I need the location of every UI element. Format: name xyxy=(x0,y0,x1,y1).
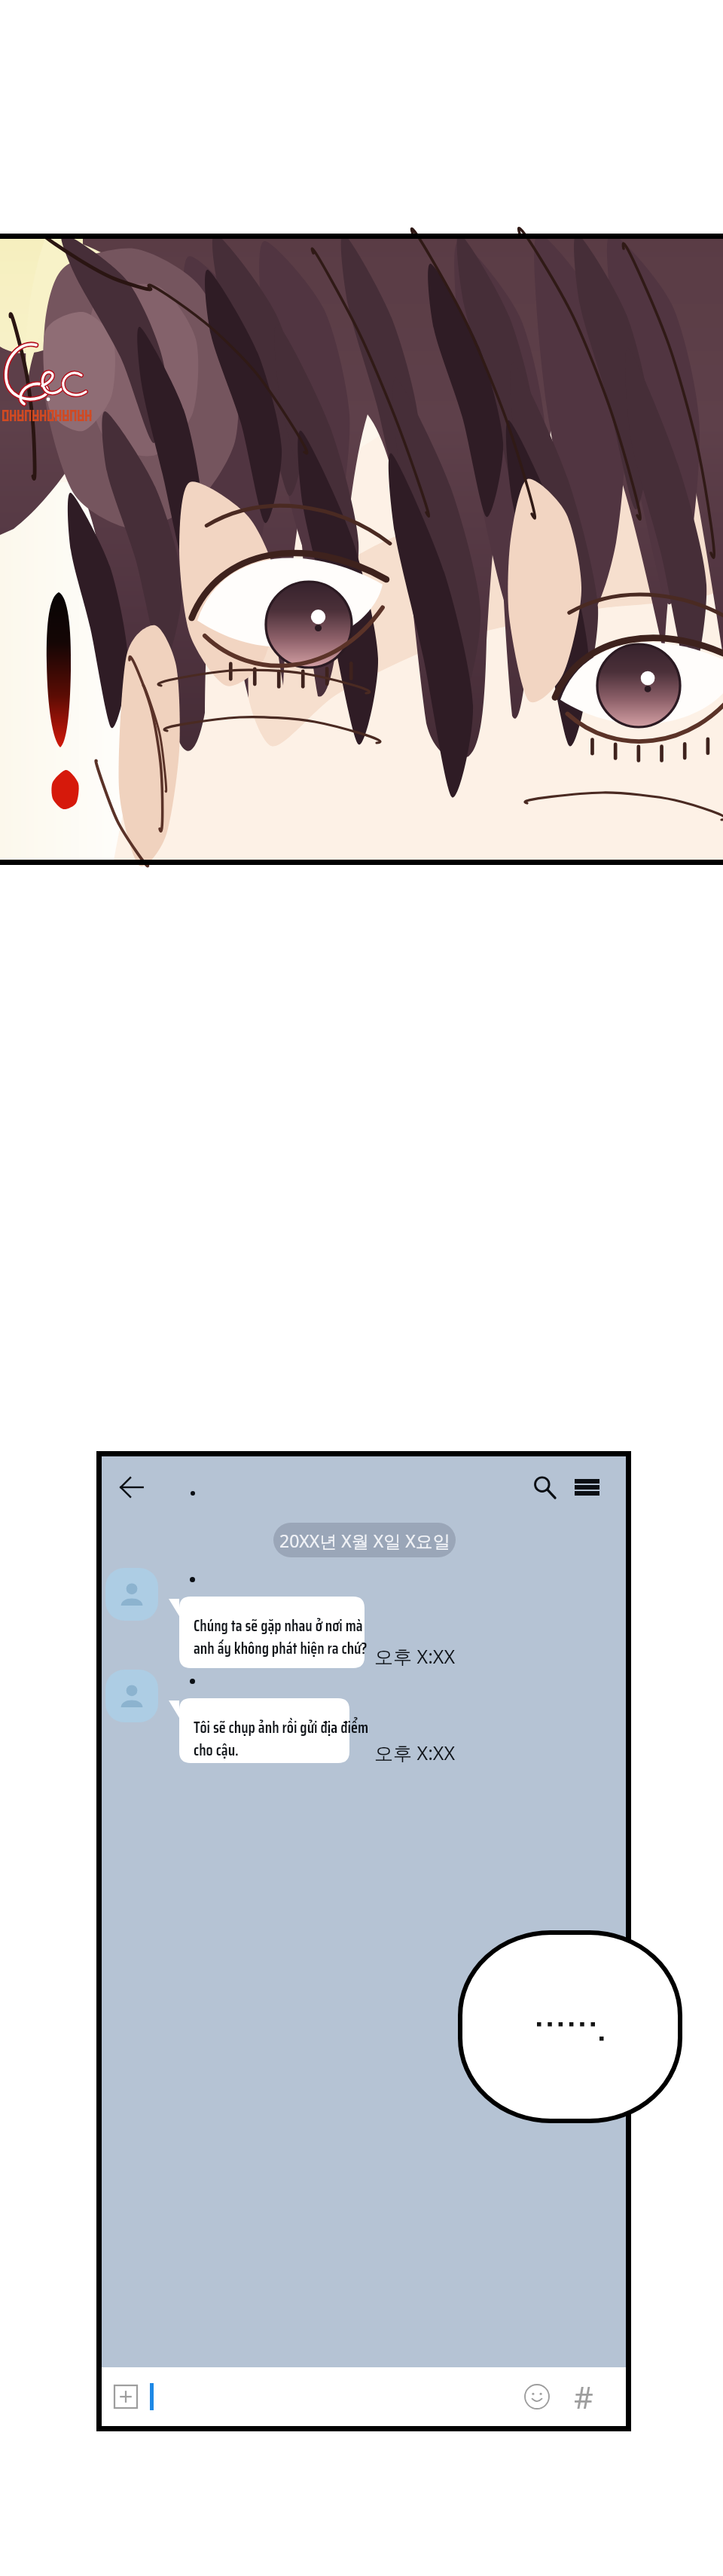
staticText: 오후 X:XX xyxy=(374,1643,456,1669)
staticText: Tôi sẽ chụp ảnh rồi gửi địa điểm cho cậu… xyxy=(194,1715,368,1763)
button[interactable]: 20XX년 X월 X일 X요일 xyxy=(273,1523,456,1557)
button[interactable]: Add attachment xyxy=(105,2376,146,2417)
staticText: # xyxy=(574,2376,593,2417)
button[interactable]: Hashtag xyxy=(563,2376,604,2417)
button[interactable]: Menu xyxy=(566,1467,607,1508)
button[interactable]: Search xyxy=(524,1467,565,1508)
button[interactable]: Contact avatar xyxy=(105,1670,158,1722)
button[interactable]: Back xyxy=(111,1467,152,1508)
staticText: 오후 X:XX xyxy=(374,1740,456,1765)
staticText: Chúng ta sẽ gặp nhau ở nơi mà anh ấy khô… xyxy=(194,1613,368,1661)
staticText: 20XX년 X월 X일 X요일 xyxy=(279,1529,450,1552)
button[interactable]: Emoji xyxy=(517,2376,557,2417)
button[interactable]: Contact avatar xyxy=(105,1568,158,1621)
